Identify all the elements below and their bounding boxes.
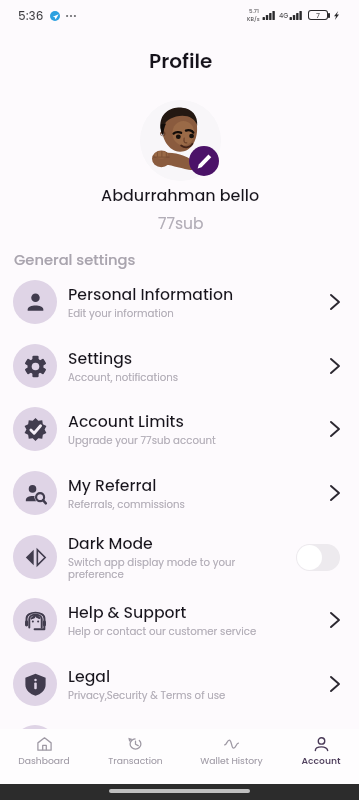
staticText: Upgrade your 77sub account	[68, 433, 216, 447]
staticText: Legal	[68, 666, 111, 688]
button[interactable]: Dark Mode	[0, 525, 359, 589]
staticText: Referrals, commissions	[68, 497, 185, 511]
staticText: My Referral	[68, 475, 157, 497]
button[interactable]: Help & Support	[0, 588, 359, 652]
staticText: Transaction	[108, 754, 163, 767]
staticText: 77sub	[158, 213, 204, 235]
button[interactable]: Edit profile picture	[189, 146, 219, 176]
button[interactable]: Logout	[0, 715, 359, 779]
staticText: Settings	[68, 348, 133, 370]
staticText: Account, notifications	[68, 370, 178, 384]
button[interactable]: Wallet History	[200, 735, 263, 778]
staticText: Privacy,Security & Terms of use	[68, 688, 226, 702]
staticText: Help or contact our customer service	[68, 624, 257, 638]
staticText: KB/s	[247, 15, 260, 23]
staticText: General settings	[14, 250, 136, 271]
staticText: Wallet History	[200, 754, 263, 767]
staticText: Switch app display mode to your preferen…	[68, 555, 236, 582]
button[interactable]: Transaction	[108, 735, 163, 778]
staticText: 7	[316, 11, 320, 19]
staticText: 5:36	[18, 7, 44, 24]
button[interactable]: Settings	[0, 334, 359, 398]
staticText: Account Limits	[68, 411, 184, 433]
staticText: Help & Support	[68, 602, 187, 624]
staticText: Edit your information	[68, 306, 174, 320]
button[interactable]: Dashboard	[18, 735, 70, 778]
staticText: Sign out of this account	[68, 751, 188, 765]
button[interactable]: Account Limits	[0, 397, 359, 461]
staticText: Abdurrahman bello	[101, 184, 260, 206]
staticText: 5.71	[249, 7, 259, 15]
staticText: Profile	[149, 47, 213, 75]
staticText: 4G	[279, 11, 289, 20]
staticText: Dark Mode	[68, 533, 153, 555]
button[interactable]: My Referral	[0, 461, 359, 525]
button[interactable]: Account	[301, 735, 341, 778]
button[interactable]: Dark mode toggle	[296, 544, 340, 571]
staticText: Account	[301, 754, 341, 767]
staticText: Dashboard	[18, 754, 70, 767]
button[interactable]: Personal Information	[0, 270, 359, 334]
staticText: Personal Information	[68, 284, 234, 306]
button[interactable]: Legal	[0, 652, 359, 716]
